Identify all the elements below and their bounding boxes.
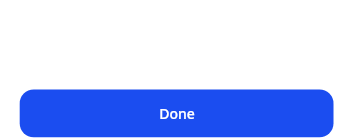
staticText: Done [159, 104, 195, 123]
button[interactable]: Done [20, 90, 334, 137]
